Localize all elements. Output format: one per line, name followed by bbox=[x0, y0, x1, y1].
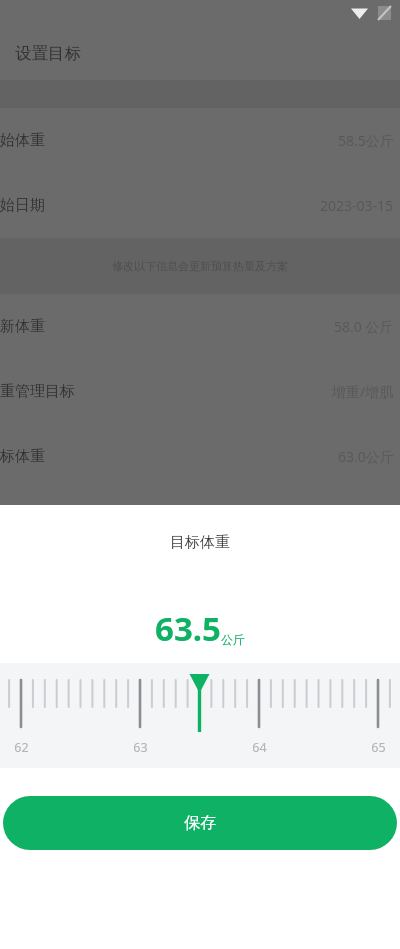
staticText: 设置目标 bbox=[15, 43, 81, 64]
staticText: 2023-03-15 bbox=[320, 196, 394, 215]
staticText: 63.0公斤 bbox=[338, 447, 394, 466]
staticText: 新体重 bbox=[0, 317, 45, 336]
button[interactable]: 新体重 bbox=[0, 294, 400, 359]
button[interactable]: 标体重 bbox=[0, 424, 400, 489]
button[interactable]: Weight ruler bbox=[0, 663, 400, 768]
staticText: 标体重 bbox=[0, 447, 45, 466]
staticText: 62 bbox=[14, 739, 29, 756]
button[interactable]: 设置目标 bbox=[0, 26, 400, 80]
button[interactable]: 保存 bbox=[3, 796, 397, 850]
staticText: 修改以下信息会更新预算热量及方案 bbox=[112, 259, 288, 273]
button[interactable]: 始体重 bbox=[0, 108, 400, 173]
staticText: 58.5公斤 bbox=[338, 131, 394, 150]
button[interactable]: 重管理目标 bbox=[0, 359, 400, 424]
staticText: 保存 bbox=[184, 813, 216, 833]
staticText: 始体重 bbox=[0, 131, 45, 150]
button[interactable]: 始日期 bbox=[0, 173, 400, 238]
staticText: 重管理目标 bbox=[0, 382, 75, 401]
staticText: 58.0 公斤 bbox=[334, 317, 394, 336]
staticText: 63.5 bbox=[155, 606, 221, 651]
staticText: 公斤 bbox=[221, 632, 245, 647]
staticText: 65 bbox=[371, 739, 386, 756]
staticText: 始日期 bbox=[0, 196, 45, 215]
staticText: 目标体重 bbox=[170, 533, 230, 552]
staticText: 63 bbox=[133, 739, 148, 756]
staticText: 64 bbox=[252, 739, 267, 756]
staticText: 增重/增肌 bbox=[332, 382, 394, 401]
